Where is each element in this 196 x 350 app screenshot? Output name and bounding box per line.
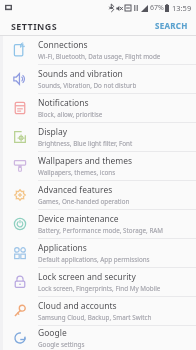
other: Google xyxy=(10,328,30,348)
other: Display xyxy=(10,127,30,147)
staticText: Google xyxy=(38,327,67,339)
staticText: Applications xyxy=(38,242,87,254)
staticText: Samsung Cloud, Backup, Smart Switch xyxy=(38,313,152,322)
staticText: SEARCH xyxy=(155,20,188,31)
staticText: Lock screen, Fingerprints, Find My Mobil… xyxy=(38,284,161,293)
other: Cloud and accounts xyxy=(10,301,30,321)
staticText: Sounds, Vibration, Do not disturb xyxy=(38,81,137,90)
staticText: Cloud and accounts xyxy=(38,300,117,312)
staticText: 67% xyxy=(150,3,164,13)
staticText: Advanced features xyxy=(38,184,113,196)
button[interactable]: Sounds and vibration xyxy=(0,65,196,94)
staticText: Google settings xyxy=(38,340,85,349)
staticText: Lock screen and security xyxy=(38,271,136,283)
button[interactable]: Google xyxy=(0,326,196,350)
other: Sounds and vibration xyxy=(10,69,30,89)
staticText: Device maintenance xyxy=(38,213,119,225)
other: Applications xyxy=(10,243,30,263)
button[interactable]: Lock screen and security xyxy=(0,268,196,297)
other: Device maintenance xyxy=(10,214,30,234)
other: Connections xyxy=(10,40,30,60)
staticText: Brightness, Blue light filter, Font xyxy=(38,139,133,148)
button[interactable]: Display xyxy=(0,123,196,152)
staticText: Block, allow, prioritise xyxy=(38,110,103,119)
button[interactable]: Connections xyxy=(0,36,196,65)
staticText: Wallpapers, themes, icons xyxy=(38,168,116,177)
staticText: Display xyxy=(38,126,67,138)
other: Notifications xyxy=(10,98,30,118)
button[interactable]: Cloud and accounts xyxy=(0,297,196,326)
staticText: SETTINGS xyxy=(11,20,58,32)
other: Wallpapers and themes xyxy=(10,156,30,176)
staticText: Wallpapers and themes xyxy=(38,155,133,167)
button[interactable]: SEARCH xyxy=(147,16,196,35)
button[interactable]: Applications xyxy=(0,239,196,268)
staticText: Battery, Performance mode, Storage, RAM xyxy=(38,226,164,235)
staticText: Default applications, App permissions xyxy=(38,255,150,264)
button[interactable]: Notifications xyxy=(0,94,196,123)
staticText: Connections xyxy=(38,39,88,51)
staticText: 13:59 xyxy=(172,3,192,13)
staticText: Wi-Fi, Bluetooth, Data usage, Flight mod… xyxy=(38,52,161,61)
other: Lock screen and security xyxy=(10,272,30,292)
staticText: Games, One-handed operation xyxy=(38,197,130,206)
button[interactable]: Device maintenance xyxy=(0,210,196,239)
button[interactable]: Wallpapers and themes xyxy=(0,152,196,181)
staticText: Notifications xyxy=(38,97,89,109)
other: Advanced features xyxy=(10,185,30,205)
staticText: Sounds and vibration xyxy=(38,68,123,80)
button[interactable]: Advanced features xyxy=(0,181,196,210)
